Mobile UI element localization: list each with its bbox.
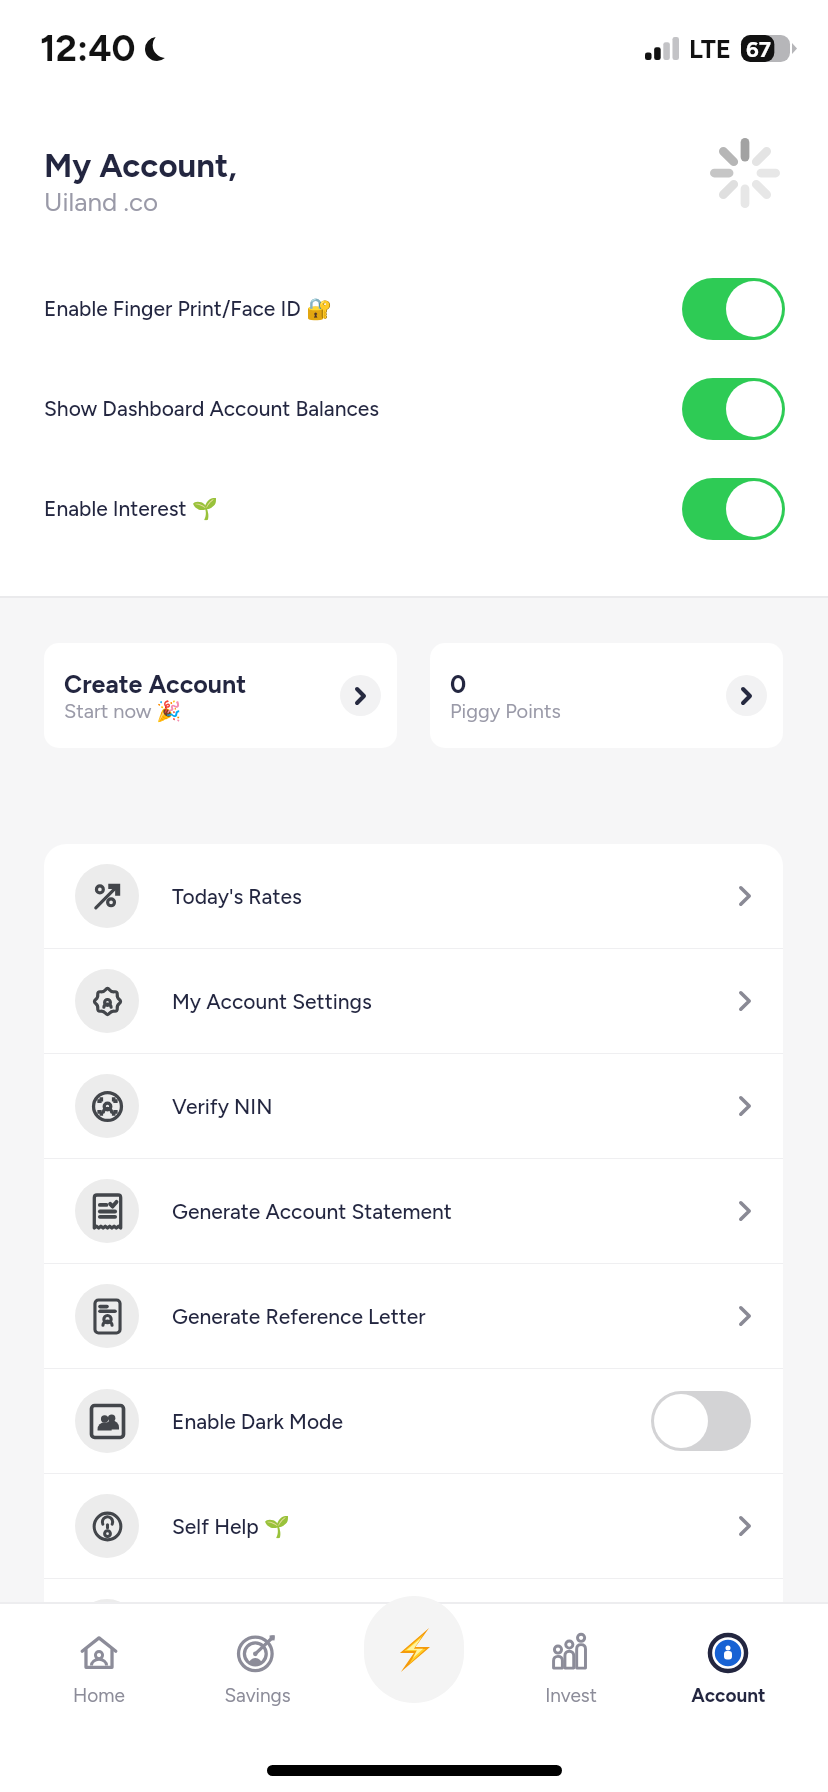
- button[interactable]: Generate Account Statement: [44, 1159, 783, 1263]
- staticText: Self Help 🌱: [172, 1514, 739, 1539]
- staticText: Enable Dark Mode: [172, 1409, 651, 1434]
- button[interactable]: Enable Finger Print/Face ID 🔐: [0, 258, 828, 359]
- button[interactable]: Quick action: [364, 1596, 464, 1703]
- button[interactable]: Generate Reference Letter: [44, 1264, 783, 1368]
- other: Loading: [710, 138, 780, 208]
- staticText: Account: [691, 1684, 766, 1707]
- staticText: My Account Settings: [172, 989, 739, 1014]
- button[interactable]: Today's Rates: [44, 844, 783, 948]
- staticText: Uiland .co: [44, 186, 159, 217]
- staticText: Log Out: [172, 1619, 739, 1644]
- button[interactable]: Switch off: [651, 1391, 751, 1451]
- button[interactable]: Verify NIN: [44, 1054, 783, 1158]
- staticText: Home: [73, 1684, 125, 1707]
- staticText: My Account,: [44, 146, 237, 186]
- staticText: LTE: [689, 33, 732, 64]
- button[interactable]: My Account Settings: [44, 949, 783, 1053]
- staticText: Today's Rates: [172, 884, 739, 909]
- staticText: Enable Finger Print/Face ID 🔐: [44, 296, 682, 321]
- button[interactable]: Account: [668, 1632, 788, 1707]
- staticText: 0: [450, 669, 467, 699]
- button[interactable]: Home: [39, 1632, 159, 1707]
- staticText: 12:40: [40, 26, 136, 70]
- button[interactable]: Create Account: [44, 643, 397, 748]
- button[interactable]: Show Dashboard Account Balances: [0, 358, 828, 459]
- staticText: Show Dashboard Account Balances: [44, 396, 682, 421]
- staticText: Generate Reference Letter: [172, 1304, 739, 1329]
- button[interactable]: Enable Dark Mode: [44, 1369, 783, 1473]
- button[interactable]: Savings: [197, 1632, 317, 1707]
- staticText: Create Account: [64, 669, 247, 699]
- button[interactable]: Switch on: [682, 278, 785, 340]
- staticText: Generate Account Statement: [172, 1199, 739, 1224]
- button[interactable]: Switch on: [682, 478, 785, 540]
- staticText: Start now 🎉: [64, 699, 182, 723]
- staticText: Verify NIN: [172, 1094, 739, 1119]
- button[interactable]: Self Help 🌱: [44, 1474, 783, 1578]
- button[interactable]: 0: [430, 643, 783, 748]
- button[interactable]: Enable Interest 🌱: [0, 458, 828, 559]
- staticText: Savings: [224, 1684, 291, 1707]
- button[interactable]: Log Out: [44, 1579, 783, 1683]
- button[interactable]: Switch on: [682, 378, 785, 440]
- staticText: Piggy Points: [450, 699, 561, 723]
- staticText: Enable Interest 🌱: [44, 496, 682, 521]
- staticText: 67: [746, 36, 771, 62]
- staticText: Invest: [545, 1684, 597, 1707]
- button[interactable]: Invest: [511, 1632, 631, 1707]
